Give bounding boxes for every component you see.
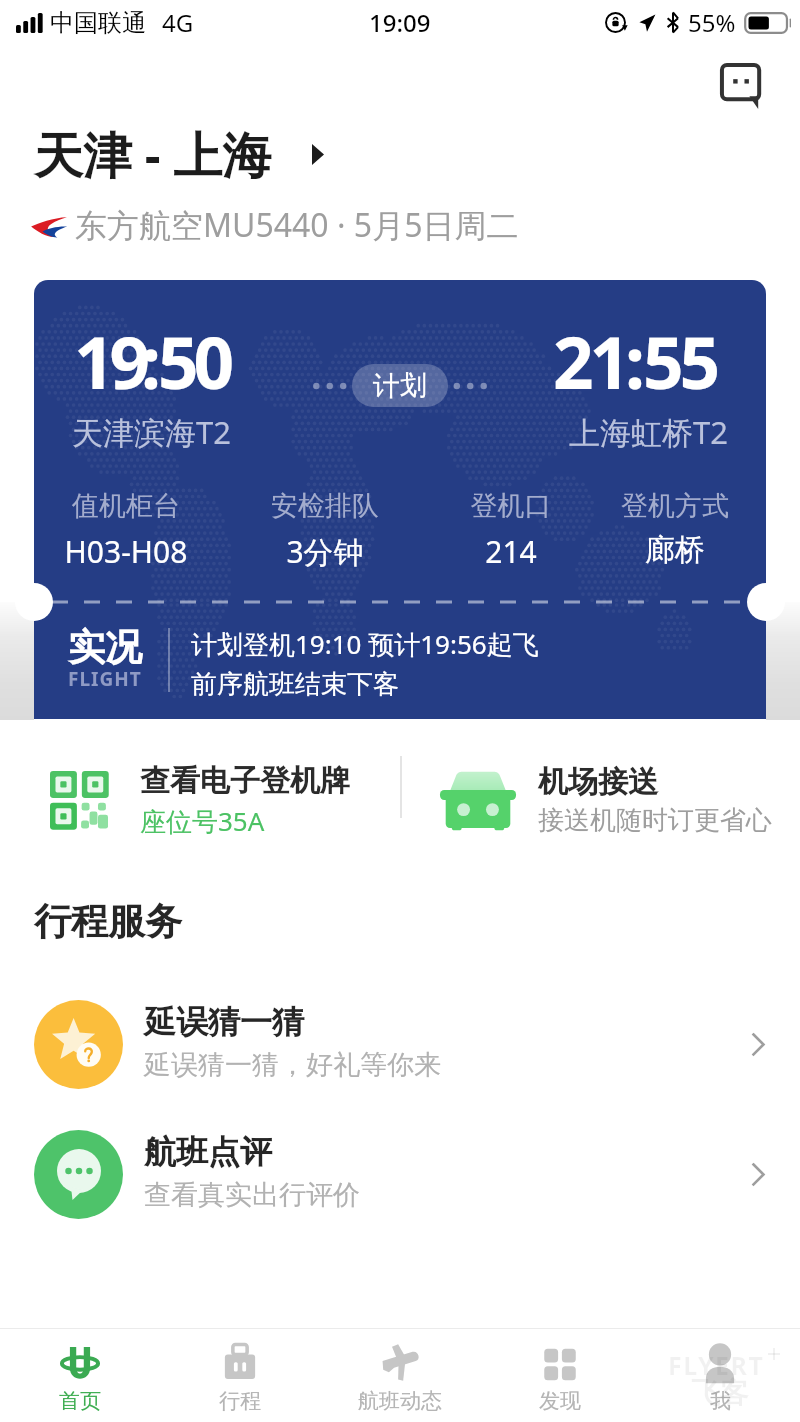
staticText: 50 bbox=[158, 313, 230, 410]
staticText: 行程服务 bbox=[34, 898, 182, 945]
staticText: 安检排队 bbox=[225, 489, 425, 523]
staticText: 前序航班结束下客 bbox=[191, 668, 399, 701]
staticText: 廊桥 bbox=[575, 531, 775, 569]
button[interactable]: 机场接送 bbox=[400, 736, 800, 864]
button[interactable]: 行程 bbox=[160, 1329, 320, 1422]
button[interactable]: Messages bbox=[712, 55, 774, 117]
button[interactable]: 我 bbox=[640, 1329, 800, 1422]
staticText: 东方航空MU5440 · 5月5日周二 bbox=[75, 203, 519, 247]
button[interactable]: 航班动态 bbox=[320, 1329, 480, 1422]
staticText: 计划 bbox=[373, 369, 427, 403]
staticText: 天津 - 上海 bbox=[34, 121, 272, 188]
staticText: 机场接送 bbox=[538, 763, 658, 801]
button[interactable] bbox=[34, 602, 766, 719]
staticText: 登机方式 bbox=[575, 489, 775, 523]
staticText: 航班点评 bbox=[144, 1132, 272, 1172]
staticText: 55% bbox=[688, 6, 736, 39]
button[interactable]: 发现 bbox=[480, 1329, 640, 1422]
staticText: : bbox=[141, 313, 161, 410]
staticText: 19:09 bbox=[369, 6, 431, 39]
staticText: 查看真实出行评价 bbox=[144, 1178, 360, 1212]
staticText: 航班动态 bbox=[358, 1388, 442, 1414]
staticText: 计划登机19:10 预计19:56起飞 bbox=[191, 626, 539, 662]
staticText: 21 bbox=[553, 313, 627, 410]
staticText: 接送机随时订更省心 bbox=[538, 804, 772, 837]
staticText: 座位号35A bbox=[140, 803, 265, 839]
staticText: 首页 bbox=[59, 1388, 101, 1414]
staticText: 55 bbox=[643, 313, 717, 410]
button[interactable]: 航班点评 bbox=[0, 1129, 800, 1219]
staticText: 实况 bbox=[68, 624, 142, 671]
staticText: 登机口 bbox=[411, 489, 611, 523]
staticText: 214 bbox=[411, 531, 611, 572]
staticText: 中国联通 bbox=[50, 8, 146, 38]
staticText: FLYERT bbox=[668, 1348, 765, 1382]
button[interactable]: 查看电子登机牌 bbox=[0, 736, 400, 864]
staticText: 值机柜台 bbox=[26, 489, 226, 523]
staticText: : bbox=[625, 313, 645, 410]
button[interactable]: 延误猜一猜 bbox=[0, 999, 800, 1089]
staticText: FLIGHT bbox=[68, 666, 142, 692]
staticText: 上海虹桥T2 bbox=[400, 411, 728, 453]
staticText: 4G bbox=[162, 6, 194, 39]
staticText: 飞客 bbox=[691, 1375, 749, 1412]
staticText: 发现 bbox=[539, 1388, 581, 1414]
staticText: H03-H08 bbox=[26, 531, 226, 572]
staticText: 查看电子登机牌 bbox=[140, 762, 350, 800]
staticText: 延误猜一猜 bbox=[144, 1002, 304, 1042]
staticText: 延误猜一猜，好礼等你来 bbox=[144, 1048, 441, 1082]
staticText: 行程 bbox=[219, 1388, 261, 1414]
staticText: 19 bbox=[74, 313, 146, 410]
staticText: 天津滨海T2 bbox=[72, 411, 231, 453]
staticText: 3分钟 bbox=[225, 531, 425, 572]
button[interactable]: 首页 bbox=[0, 1329, 160, 1422]
staticText: 我 bbox=[710, 1388, 731, 1414]
button[interactable] bbox=[34, 280, 766, 602]
